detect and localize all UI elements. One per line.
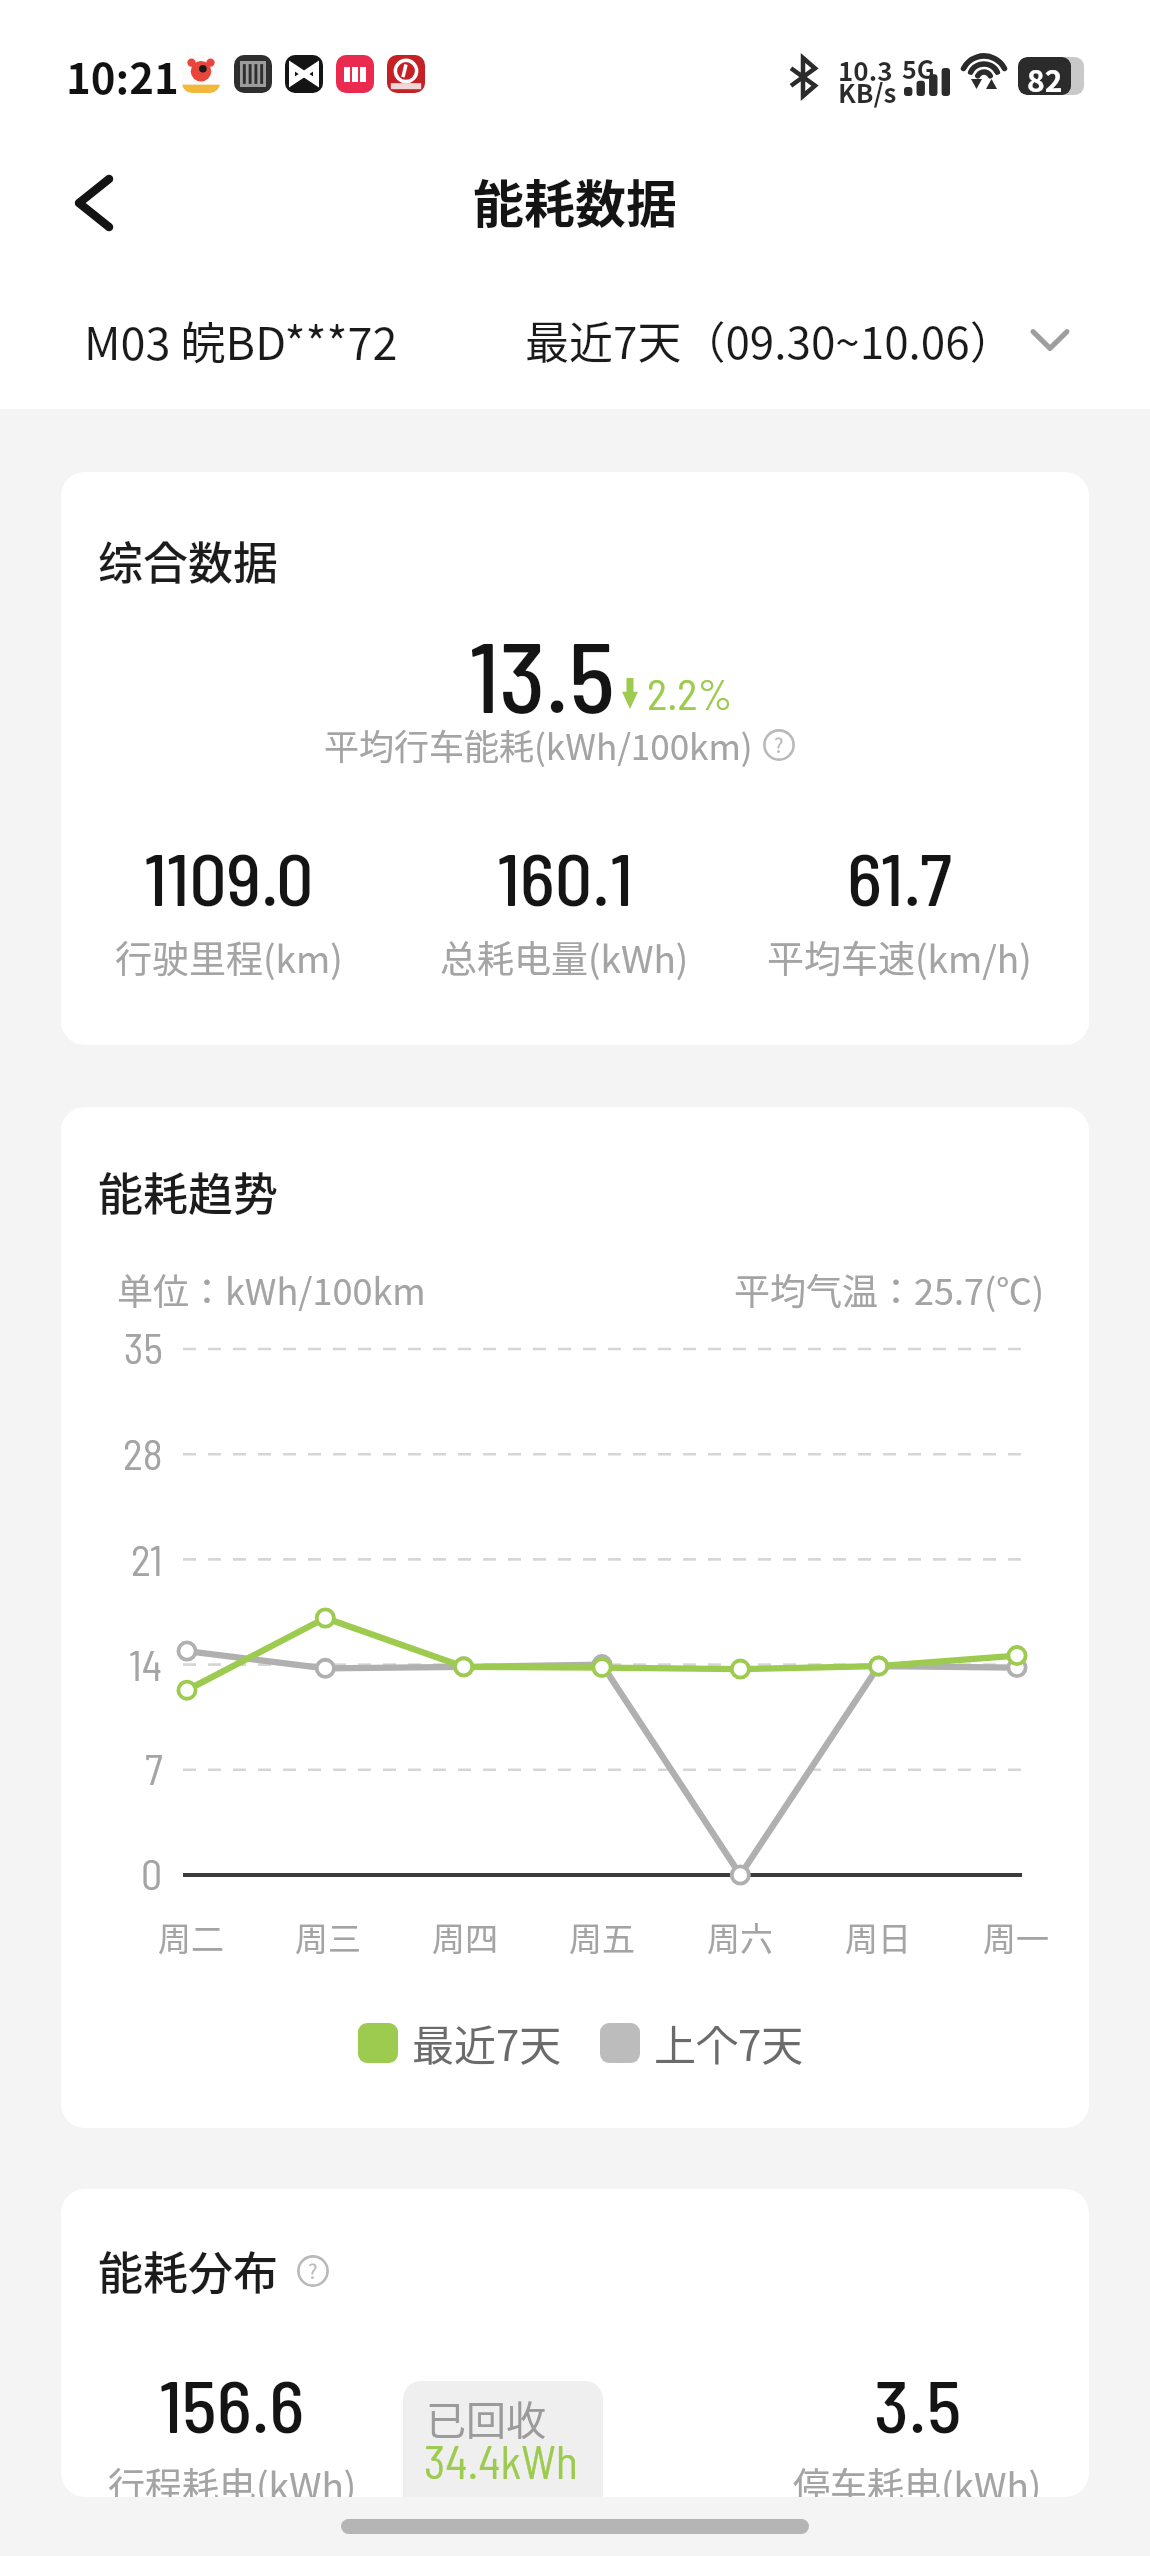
- staticText: 能耗分布: [98, 2238, 279, 2303]
- staticText: 最近7天: [412, 2012, 562, 2073]
- staticText: 总耗电量(kWh): [440, 930, 689, 984]
- staticText: 10:21: [66, 45, 179, 106]
- staticText: 最近7天（09.30~10.06）: [525, 308, 1014, 372]
- button[interactable]: Back: [46, 155, 142, 251]
- staticText: 周二: [158, 1913, 224, 1961]
- staticText: 82: [1027, 57, 1063, 95]
- staticText: 综合数据: [98, 528, 279, 593]
- staticText: 2.2%: [647, 667, 733, 719]
- staticText: 10.3: [838, 51, 893, 89]
- staticText: 停车耗电(kWh): [793, 2457, 1042, 2497]
- staticText: 周日: [845, 1913, 911, 1961]
- staticText: 13.5: [469, 615, 615, 733]
- staticText: ?: [774, 730, 784, 759]
- staticText: 5G: [902, 50, 935, 86]
- staticText: 行驶里程(km): [115, 930, 343, 984]
- staticText: 周五: [569, 1913, 635, 1961]
- staticText: 周六: [707, 1913, 773, 1961]
- staticText: 能耗数据: [473, 164, 678, 238]
- button[interactable]: About energy distribution: [297, 2255, 329, 2287]
- button[interactable]: 最近7天（09.30~10.06）: [525, 308, 1068, 372]
- staticText: 平均气温：25.7(℃): [734, 1263, 1045, 1315]
- staticText: 3.5: [874, 2359, 962, 2448]
- staticText: 1109.0: [144, 832, 314, 921]
- staticText: ?: [308, 2256, 318, 2285]
- staticText: 上个7天: [654, 2012, 804, 2073]
- staticText: 单位：kWh/100km: [117, 1263, 426, 1315]
- staticText: 35: [124, 1322, 163, 1372]
- staticText: 行程耗电(kWh): [108, 2457, 357, 2497]
- staticText: 21: [131, 1534, 163, 1584]
- staticText: 7: [145, 1743, 163, 1793]
- staticText: 61.7: [847, 832, 952, 921]
- button[interactable]: About average driving energy consumption: [763, 729, 795, 761]
- staticText: 28: [123, 1428, 163, 1478]
- button[interactable]: M03 皖BD***72: [84, 308, 398, 373]
- staticText: 0: [141, 1848, 163, 1898]
- staticText: 平均行车能耗(kWh/100km): [324, 719, 753, 770]
- staticText: 34.4kWh: [424, 2433, 579, 2488]
- staticText: 周四: [432, 1913, 498, 1961]
- staticText: 14: [129, 1639, 163, 1689]
- staticText: 能耗趋势: [98, 1159, 279, 1224]
- button[interactable]: 最近7天: [358, 2012, 562, 2073]
- staticText: KB/s: [838, 73, 897, 111]
- staticText: M03 皖BD***72: [84, 308, 398, 373]
- staticText: 平均车速(km/h): [767, 930, 1032, 984]
- staticText: 160.1: [497, 832, 633, 921]
- staticText: 已回收: [426, 2389, 546, 2447]
- staticText: 156.6: [159, 2359, 305, 2448]
- button[interactable]: 上个7天: [600, 2012, 804, 2073]
- staticText: 周三: [295, 1913, 361, 1961]
- staticText: 周一: [983, 1913, 1049, 1961]
